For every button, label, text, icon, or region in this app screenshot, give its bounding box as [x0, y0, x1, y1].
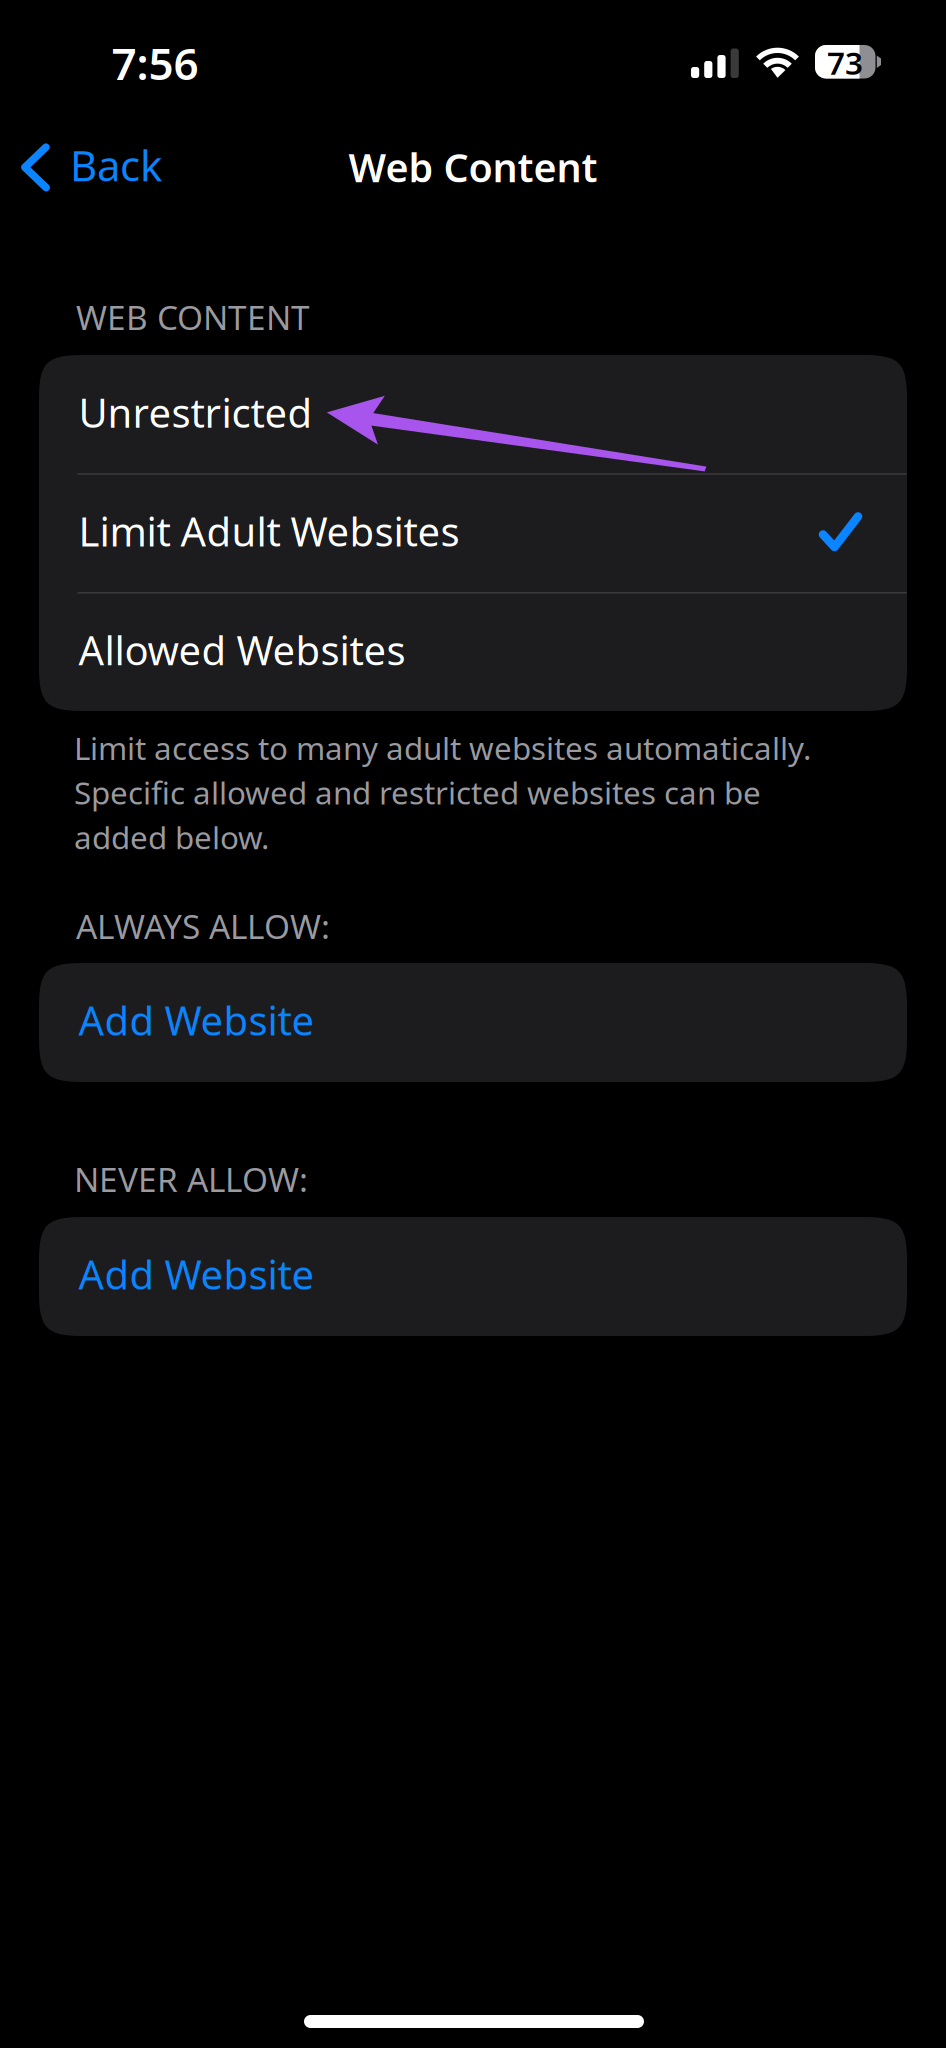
staticText: WEB CONTENT: [76, 295, 310, 339]
staticText: 7:56: [111, 34, 198, 92]
staticText: Add Website: [78, 993, 314, 1046]
staticText: ALWAYS ALLOW:: [76, 904, 330, 948]
staticText: 73: [827, 42, 863, 83]
staticText: Back: [70, 137, 162, 193]
staticText: Allowed Websites: [78, 623, 405, 676]
staticText: Add Website: [78, 1247, 314, 1300]
staticText: Unrestricted: [78, 386, 312, 439]
staticText: Limit Adult Websites: [78, 504, 459, 557]
button[interactable]: Back: [40, 128, 200, 208]
button[interactable]: Add Website: [39, 963, 907, 1082]
button[interactable]: Unrestricted: [39, 355, 907, 474]
button[interactable]: Allowed Websites: [39, 592, 907, 711]
button[interactable]: Add Website: [39, 1217, 907, 1336]
staticText: Web Content: [348, 141, 597, 193]
staticText: NEVER ALLOW:: [74, 1157, 308, 1201]
button[interactable]: Limit Adult Websites: [39, 474, 907, 592]
staticText: Limit access to many adult websites auto…: [74, 727, 811, 858]
